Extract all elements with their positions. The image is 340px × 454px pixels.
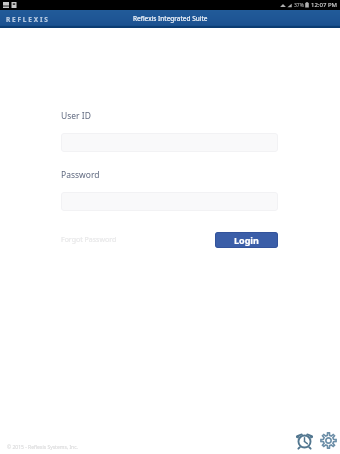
button[interactable]: Alarm (296, 432, 313, 449)
staticText: Password (61, 169, 100, 181)
staticText: REFLEXIS (6, 15, 50, 24)
staticText: Reflexis Integrated Suite (133, 14, 208, 23)
staticText: 12:07 PM (311, 1, 337, 9)
staticText: User ID (61, 110, 91, 122)
staticText: © 2015 - Reflexis Systems, Inc. (7, 444, 78, 451)
button[interactable]: Login (215, 232, 278, 248)
button[interactable]: Settings (320, 432, 337, 449)
button[interactable]: Forgot Password (61, 235, 117, 245)
staticText: Login (234, 234, 259, 246)
staticText: 37% (294, 2, 304, 9)
